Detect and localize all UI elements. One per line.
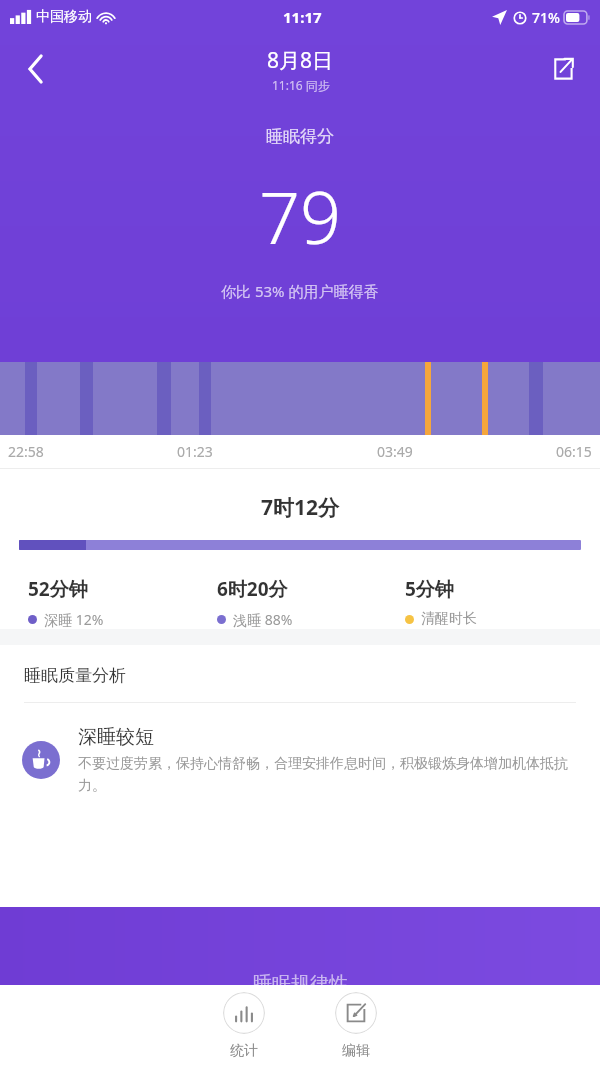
button[interactable]: Back [8,41,64,97]
staticText: 11:17 [283,7,322,27]
staticText: 11:16 同步 [272,77,330,93]
staticText: 6时20分 [217,576,288,602]
staticText: 深睡较短 [78,725,154,749]
staticText: 52分钟 [28,576,88,602]
staticText: 03:49 [377,442,413,461]
staticText: 06:15 [556,442,592,461]
staticText: 71% [532,8,560,27]
staticText: 编辑 [342,1042,370,1060]
staticText: 睡眠质量分析 [24,665,126,686]
staticText: 8月8日 [267,46,334,75]
staticText: 清醒时长 [421,610,477,628]
staticText: 统计 [230,1042,258,1060]
staticText: 睡眠规律性 [253,972,348,996]
staticText: 中国移动 [36,8,92,26]
staticText: 79 [259,167,342,265]
button[interactable]: 5分钟 [405,576,584,628]
button[interactable]: Share [536,43,588,95]
button[interactable]: 52分钟 [28,576,217,629]
staticText: 深睡 12% [44,610,104,629]
staticText: 浅睡 88% [233,610,293,629]
staticText: 你比 53% 的用户睡得香 [221,281,379,301]
button[interactable]: 睡眠规律性 [0,907,600,985]
staticText: 7时12分 [261,493,340,522]
button[interactable]: 6时20分 [217,576,405,629]
staticText: 睡眠得分 [266,126,334,147]
button[interactable]: 统计 [219,988,269,1064]
button[interactable]: 编辑 [331,988,381,1064]
staticText: 22:58 [8,442,44,461]
staticText: 01:23 [177,442,213,461]
staticText: 不要过度劳累，保持心情舒畅，合理安排作息时间，积极锻炼身体增加机体抵抗力。 [78,755,580,795]
button[interactable]: 深睡较短 [22,725,580,795]
staticText: 5分钟 [405,576,454,602]
